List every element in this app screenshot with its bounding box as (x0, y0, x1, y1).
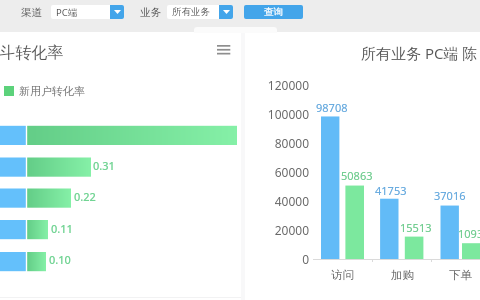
staticText: 15513 (400, 220, 432, 235)
button[interactable]: Chart menu (213, 39, 235, 61)
staticText: 100000 (267, 106, 309, 122)
staticText: 41753 (375, 183, 407, 198)
staticText: 新用户转化率 (19, 84, 85, 98)
staticText: 所有业务 PC端 陈 (361, 43, 478, 63)
staticText: 下单 (449, 268, 472, 282)
staticText: 120000 (267, 77, 309, 93)
staticText: 访问 (331, 268, 354, 282)
staticText: 斗转化率 (0, 42, 64, 62)
staticText: 50863 (341, 168, 373, 183)
staticText: 加购 (391, 268, 414, 282)
staticText: 40000 (274, 193, 309, 209)
staticText: 所有业务 (172, 6, 210, 18)
staticText: 业务 (140, 6, 161, 19)
staticText: 60000 (274, 164, 309, 180)
button[interactable]: 查询 (244, 5, 303, 19)
staticText: 渠道 (21, 6, 42, 19)
staticText: 0.10 (49, 252, 71, 267)
staticText: 0.31 (93, 158, 115, 173)
staticText: 20000 (274, 222, 309, 238)
staticText: 查询 (264, 6, 283, 18)
staticText: 1093 (458, 226, 480, 241)
staticText: 98708 (316, 100, 348, 115)
staticText: 80000 (274, 135, 309, 151)
staticText: PC端 (56, 6, 78, 19)
button[interactable]: PC端 (51, 5, 124, 19)
staticText: 0.22 (74, 189, 96, 204)
staticText: 0.11 (51, 221, 73, 236)
button[interactable]: 所有业务 (167, 5, 233, 19)
staticText: 37016 (434, 188, 466, 203)
staticText: 0 (302, 251, 309, 267)
